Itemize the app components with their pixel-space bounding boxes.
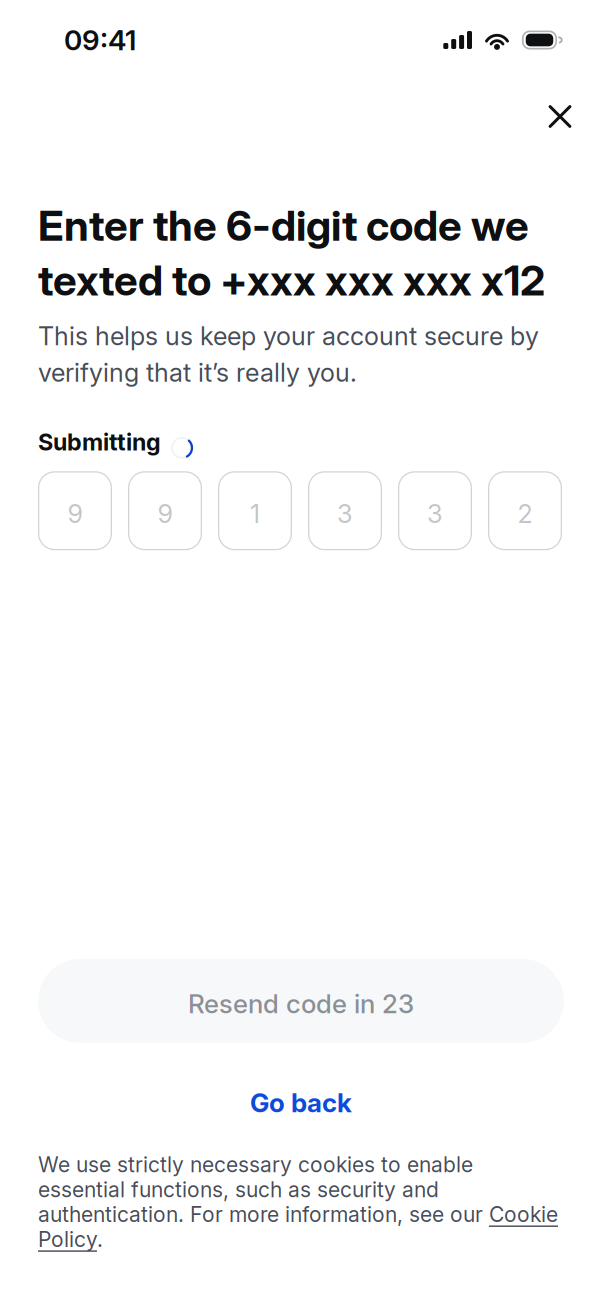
staticText: 3: [427, 498, 443, 529]
button[interactable]: Close: [532, 88, 588, 144]
staticText: 2: [517, 498, 532, 529]
button[interactable]: Digit 6: [488, 471, 562, 550]
staticText: 3: [337, 498, 353, 529]
button[interactable]: Digit 4: [308, 471, 382, 550]
staticText: 9: [157, 498, 172, 529]
staticText: 09:41: [64, 23, 136, 57]
staticText: 1: [250, 498, 260, 529]
staticText: Go back: [250, 1087, 352, 1119]
button[interactable]: Digit 1: [38, 471, 112, 550]
button[interactable]: Cookie Policy: [38, 1152, 558, 1252]
staticText: Resend code in 23: [188, 988, 414, 1020]
button[interactable]: Digit 3: [218, 471, 292, 550]
staticText: We use strictly necessary cookies to ena…: [38, 1152, 558, 1252]
button[interactable]: Resend code in 23: [38, 959, 564, 1043]
staticText: Enter the 6-digit code we texted to +xxx…: [38, 200, 545, 306]
staticText: This helps us keep your account secure b…: [38, 321, 539, 388]
button[interactable]: Digit 5: [398, 471, 472, 550]
button[interactable]: Digit 2: [128, 471, 202, 550]
staticText: 9: [67, 498, 82, 529]
staticText: Submitting: [38, 428, 161, 456]
button[interactable]: Go back: [38, 1043, 564, 1152]
